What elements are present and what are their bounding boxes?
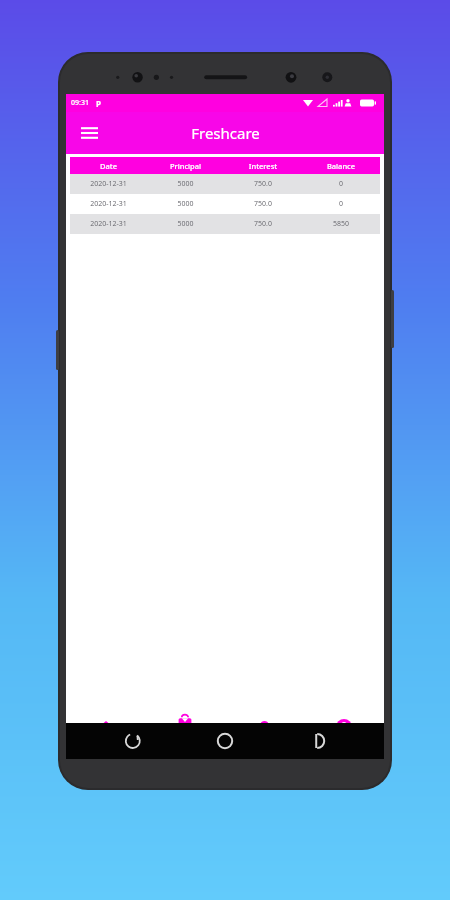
button[interactable]: Notifications [224, 704, 304, 750]
button[interactable]: 2020-12-31 [70, 194, 380, 214]
staticText: 750.0 [224, 179, 302, 189]
staticText: 750.0 [224, 199, 302, 209]
staticText: 09:31 [71, 98, 89, 108]
staticText: 0 [302, 199, 380, 209]
staticText: 5000 [147, 179, 224, 189]
staticText: Balance [302, 161, 380, 171]
button[interactable]: Open navigation menu [74, 118, 104, 148]
staticText: 2020-12-31 [70, 219, 147, 229]
staticText: 750.0 [224, 219, 302, 229]
staticText: 5000 [147, 219, 224, 229]
staticText: Date [70, 161, 147, 171]
staticText: 0 [302, 179, 380, 189]
staticText: 5850 [302, 219, 380, 229]
staticText: Interest [224, 161, 302, 171]
button[interactable]: Home [66, 704, 145, 750]
button[interactable]: Loans [145, 704, 224, 750]
staticText: 2020-12-31 [70, 199, 147, 209]
staticText: Principal [147, 161, 224, 171]
staticText: P [96, 98, 101, 109]
staticText: 5000 [147, 199, 224, 209]
staticText: Freshcare [191, 123, 260, 143]
button[interactable]: 2020-12-31 [70, 214, 380, 234]
button[interactable]: 2020-12-31 [70, 174, 380, 194]
staticText: 2020-12-31 [70, 179, 147, 189]
button[interactable]: Profile [304, 704, 384, 750]
